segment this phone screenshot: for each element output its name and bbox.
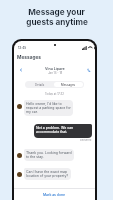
button[interactable]: Back [17, 66, 24, 73]
button[interactable]: Details [26, 82, 54, 87]
staticText: Vinu Lipare [45, 67, 65, 71]
staticText: Hello owner, I'd like to [26, 102, 62, 106]
staticText: Details [35, 83, 45, 87]
staticText: location of your property? [26, 174, 69, 178]
button[interactable]: Mark as done [14, 189, 95, 200]
staticText: Mark as done [43, 193, 66, 197]
staticText: accommodate that. [36, 130, 68, 134]
staticText: Jan 14 - 18 [48, 71, 63, 74]
staticText: Message your [28, 7, 85, 17]
staticText: my car. [26, 110, 38, 114]
staticText: Not a problem. We can [36, 126, 74, 130]
staticText: request a parking space for [26, 106, 71, 110]
staticText: Today at 17:32 [14, 92, 95, 95]
staticText: Can I have the exact map [26, 170, 68, 174]
button[interactable]: Call [85, 66, 92, 73]
staticText: Messages [61, 83, 76, 87]
staticText: guests anytime [26, 17, 88, 27]
staticText: Messages [17, 54, 42, 60]
button[interactable]: Messages [54, 82, 83, 87]
staticText: 13:45 [18, 46, 27, 50]
staticText: Delivered [80, 139, 92, 142]
staticText: to the stay. [26, 155, 44, 159]
staticText: Thank you. Looking forward [26, 151, 72, 155]
